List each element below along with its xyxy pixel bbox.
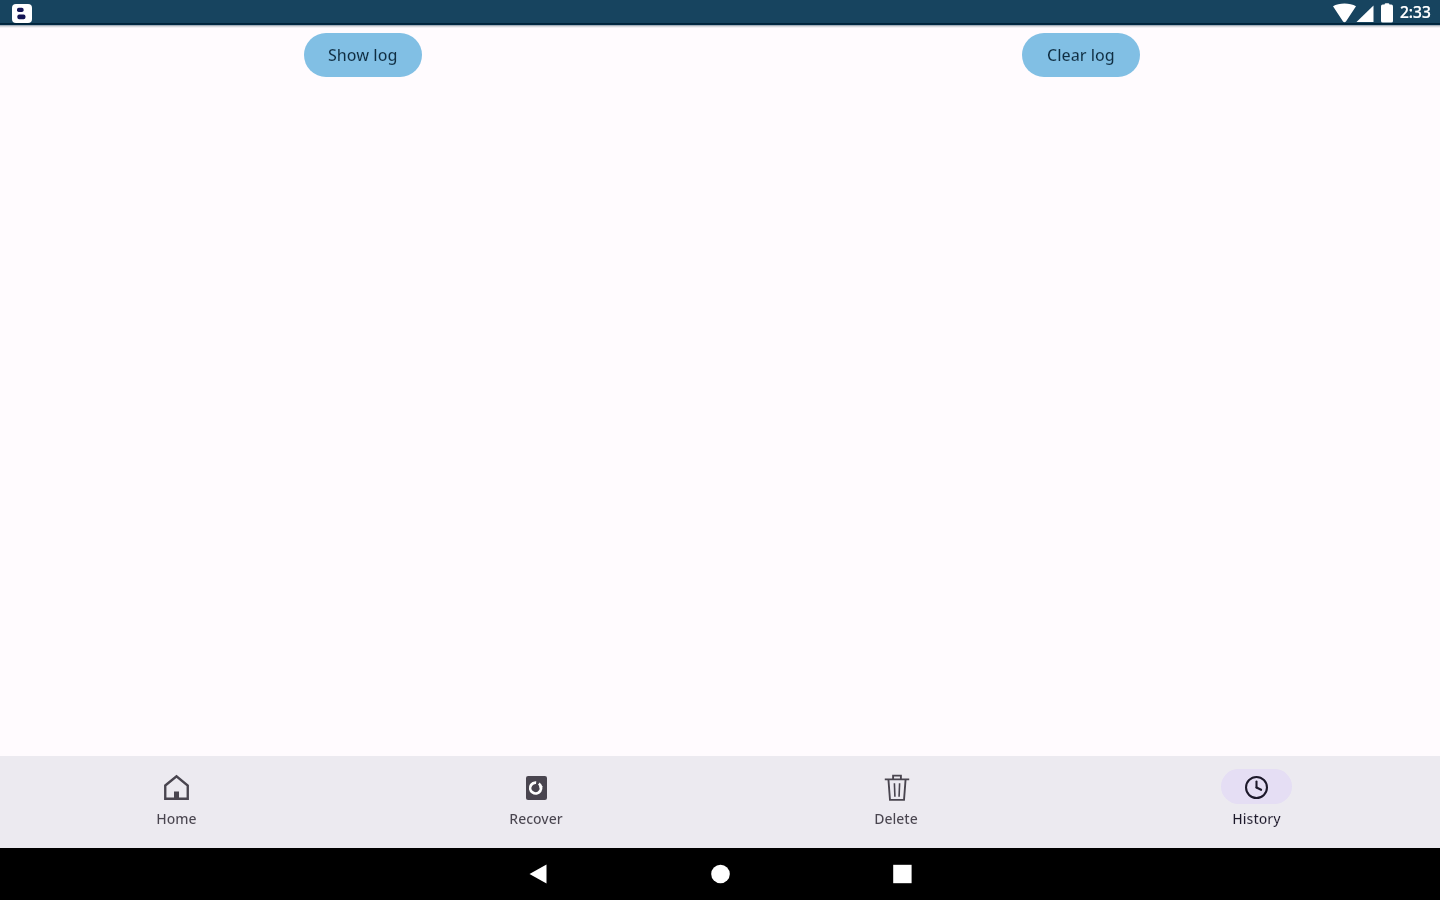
other: App notification (12, 4, 32, 23)
staticText: History (1232, 809, 1281, 828)
button[interactable]: History (1076, 756, 1436, 828)
staticText: Delete (874, 809, 918, 828)
staticText: Home (156, 809, 197, 828)
button[interactable]: Show log (304, 33, 422, 77)
staticText: Clear log (1047, 44, 1115, 66)
button[interactable]: Home (0, 756, 356, 828)
button[interactable]: Delete (716, 756, 1076, 828)
staticText: 2:33 (1400, 1, 1431, 22)
button[interactable]: Recents (823, 848, 983, 900)
button[interactable]: Recover (356, 756, 716, 828)
staticText: Recover (509, 809, 563, 828)
button[interactable]: Back (457, 848, 617, 900)
button[interactable]: Home (640, 848, 800, 900)
button[interactable]: Clear log (1022, 33, 1140, 77)
staticText: Show log (328, 44, 398, 66)
